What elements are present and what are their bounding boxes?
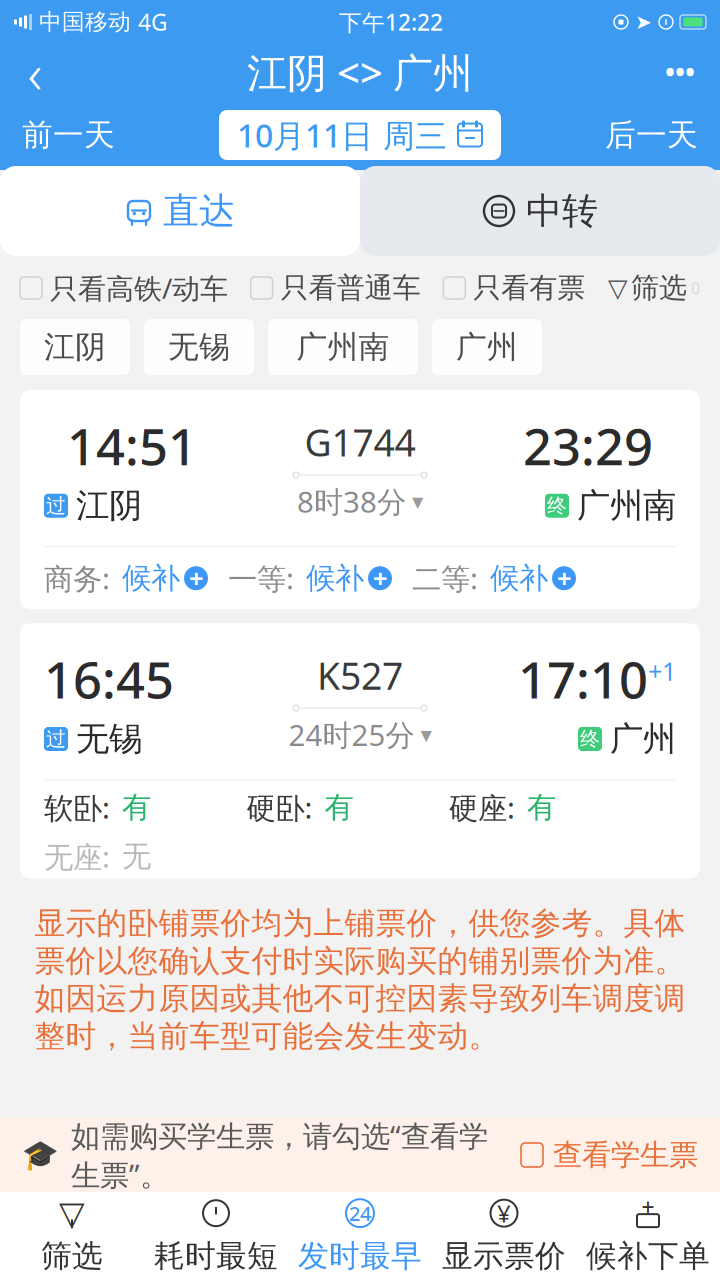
staticText: 广州南 — [577, 485, 676, 526]
staticText: 无锡 — [76, 718, 142, 759]
staticText: 14:51 — [67, 412, 197, 479]
staticText: 江阴 — [44, 328, 106, 366]
staticText: 只看普通车 — [281, 271, 421, 305]
button[interactable]: 只看有票 — [443, 263, 585, 313]
button[interactable]: ▽ — [0, 1192, 144, 1280]
button[interactable]: 江阴 — [20, 319, 130, 375]
staticText: 广州 — [610, 718, 676, 759]
staticText: 终 — [580, 727, 600, 751]
staticText: ¥ — [497, 1197, 511, 1229]
staticText: 终 — [547, 493, 567, 518]
staticText: ▽ — [608, 274, 627, 302]
staticText: 二等: — [412, 559, 486, 598]
staticText: 候补 — [122, 560, 180, 596]
button[interactable]: + — [576, 1192, 720, 1280]
staticText: G1744 — [304, 417, 415, 467]
staticText: 4G — [138, 7, 168, 37]
button[interactable]: 后一天 — [583, 108, 720, 162]
staticText: 只看高铁/动车 — [50, 269, 228, 307]
staticText: 10月11日 周三 — [237, 114, 447, 156]
staticText: 中转 — [526, 189, 598, 233]
staticText: + — [557, 561, 571, 595]
staticText: 17:10 — [518, 645, 648, 712]
button[interactable]: 查看学生票 — [521, 1131, 698, 1179]
staticText: 中国移动 — [39, 8, 131, 36]
staticText: 候补下单 — [586, 1237, 710, 1275]
staticText: 商务: — [44, 559, 118, 598]
staticText: ▾ — [412, 488, 423, 514]
staticText: K527 — [317, 651, 403, 700]
staticText: 过 — [46, 493, 66, 518]
staticText: 广州南 — [296, 328, 389, 366]
staticText: ▽ — [59, 1194, 85, 1232]
button[interactable]: ¥ — [432, 1192, 576, 1280]
button[interactable]: ▽ — [608, 263, 700, 313]
button[interactable]: 10月11日 周三 — [219, 110, 501, 160]
staticText: 只看有票 — [473, 271, 585, 305]
button[interactable]: 直达 — [0, 166, 360, 256]
staticText: 软卧: — [44, 788, 118, 827]
staticText: 过 — [46, 727, 66, 751]
staticText: 显示票价 — [442, 1237, 566, 1275]
staticText: 发时最早 — [298, 1237, 422, 1275]
staticText: 筛选 — [631, 271, 687, 305]
button[interactable]: 只看普通车 — [251, 263, 421, 313]
staticText: 有 — [527, 789, 556, 825]
staticText: 0 — [691, 277, 700, 299]
staticText: 如需购买学生票，请勾选“查看学生票”。 — [71, 1116, 488, 1194]
staticText: 8时38分 — [297, 482, 406, 521]
staticText: ▾ — [420, 722, 431, 747]
staticText: 江阴 — [76, 485, 142, 526]
staticText: +1 — [648, 654, 676, 688]
button[interactable]: 耗时最短 — [144, 1192, 288, 1280]
staticText: + — [189, 561, 203, 595]
staticText: 24时25分 — [288, 715, 414, 754]
staticText: + — [373, 561, 387, 595]
button[interactable]: 24 — [288, 1192, 432, 1280]
button[interactable]: 无锡 — [144, 319, 254, 375]
staticText: 耗时最短 — [154, 1237, 278, 1275]
button[interactable]: 广州南 — [268, 319, 418, 375]
staticText: ➤ — [635, 11, 652, 33]
staticText: 23:29 — [523, 412, 653, 479]
button[interactable]: 返回 — [0, 44, 70, 100]
staticText: 江阴 <> 广州 — [247, 45, 473, 98]
staticText: 广州 — [456, 328, 518, 366]
staticText: 无锡 — [168, 328, 230, 366]
staticText: 硬座: — [449, 788, 523, 827]
staticText: 无 — [122, 838, 151, 874]
staticText: 查看学生票 — [553, 1137, 698, 1173]
staticText: 后一天 — [605, 116, 698, 154]
staticText: 硬卧: — [246, 788, 320, 827]
button[interactable]: 广州 — [432, 319, 542, 375]
button[interactable]: 更多 — [640, 44, 720, 100]
staticText: 24 — [349, 1200, 371, 1226]
staticText: 显示的卧铺票价均为上铺票价，供您参考。具体票价以您确认支付时实际购买的铺别票价为… — [34, 904, 685, 1055]
button[interactable]: 前一天 — [0, 108, 137, 162]
staticText: ••• — [665, 54, 695, 90]
staticText: 前一天 — [22, 116, 115, 154]
button[interactable]: 只看高铁/动车 — [20, 261, 228, 315]
staticText: 候补 — [490, 560, 548, 596]
staticText: 16:45 — [44, 645, 174, 712]
button[interactable]: 中转 — [360, 166, 720, 256]
staticText: + — [641, 1192, 654, 1222]
staticText: 一等: — [228, 559, 302, 598]
staticText: 候补 — [306, 560, 364, 596]
staticText: 筛选 — [41, 1237, 103, 1275]
staticText: 无座: — [44, 837, 118, 876]
staticText: 直达 — [163, 189, 235, 233]
staticText: 有 — [122, 789, 151, 825]
staticText: 🎓 — [22, 1138, 59, 1172]
staticText: 下午12:22 — [339, 7, 443, 37]
staticText: ‹ — [27, 35, 42, 109]
staticText: 有 — [324, 789, 353, 825]
